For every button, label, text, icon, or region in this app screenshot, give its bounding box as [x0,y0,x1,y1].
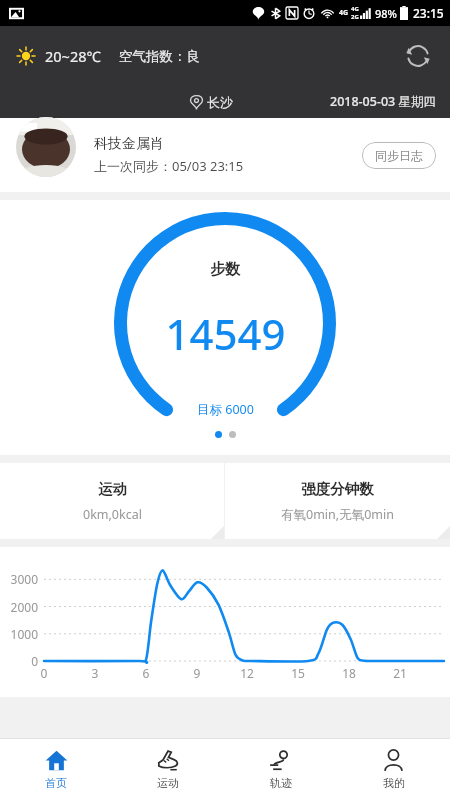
staticText: 15 [286,665,310,681]
button[interactable]: 运动 [112,739,224,800]
staticText: 轨迹 [270,776,292,790]
button[interactable]: 轨迹 [224,739,337,800]
staticText: 6 [134,665,158,681]
staticText: 2018-05-03 星期四 [330,93,436,110]
staticText: 运动 [157,776,179,790]
staticText: 0 [4,653,38,669]
staticText: 科技金属肖 [94,135,164,153]
staticText: 14549 [165,305,286,362]
staticText: 23:15 [413,5,444,21]
staticText: 运动 [98,480,127,498]
staticText: 有氧0min,无氧0min [281,506,394,523]
staticText: 步数 [210,260,240,279]
button[interactable]: Refresh [398,36,438,76]
button[interactable]: 科技金属肖 [0,118,450,192]
staticText: 12 [235,665,259,681]
staticText: 0km,0kcal [83,506,142,523]
button[interactable]: 强度分钟数 [225,463,450,539]
staticText: 4G [351,5,359,13]
staticText: 3 [83,665,107,681]
staticText: 21 [388,665,412,681]
staticText: 2G [351,13,359,21]
staticText: 强度分钟数 [301,480,374,498]
staticText: 首页 [45,776,67,790]
button[interactable]: 长沙 [189,94,233,110]
staticText: 长沙 [207,94,233,110]
staticText: 2000 [4,599,38,615]
staticText: 98% [375,6,397,21]
staticText: 9 [185,665,209,681]
button[interactable]: 我的 [337,739,450,800]
button[interactable]: 首页 [0,739,112,800]
staticText: 18 [337,665,361,681]
staticText: 20~28℃ [45,46,101,66]
staticText: 4G [339,8,349,18]
button[interactable]: 同步日志 [362,142,436,169]
staticText: 同步日志 [375,148,423,163]
button[interactable]: 运动 [0,463,224,539]
staticText: 1000 [4,626,38,642]
staticText: 0 [32,665,56,681]
staticText: 3000 [4,571,38,587]
staticText: 我的 [383,776,405,790]
staticText: 目标 6000 [197,401,254,418]
staticText: 上一次同步：05/03 23:15 [94,157,244,175]
staticText: 空气指数：良 [119,48,200,65]
